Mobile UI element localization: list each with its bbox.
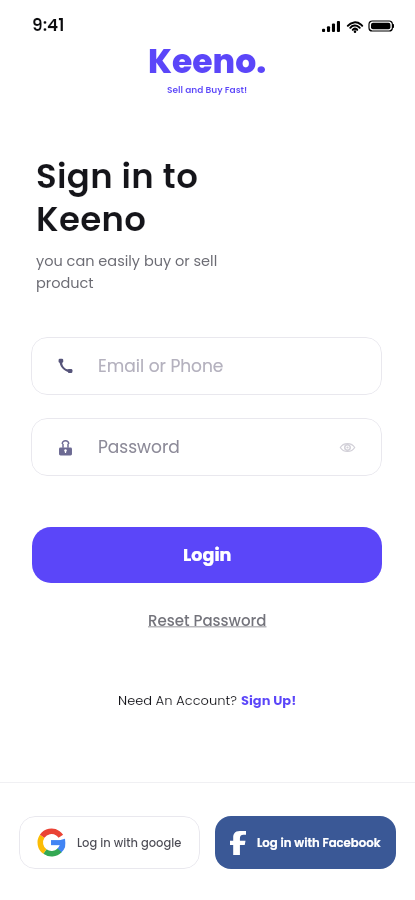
staticText: Log in with google [77,835,182,851]
staticText: 9:41 [32,13,65,37]
button[interactable]: Password [31,418,382,476]
button[interactable]: Log in with google [19,816,200,869]
button[interactable]: Sign Up! [241,691,297,709]
button[interactable]: Reset Password [144,606,271,635]
staticText: Sign in to Keeno [36,152,199,243]
button[interactable]: Show password [335,435,359,459]
button[interactable]: Login [32,527,382,583]
staticText: Login [183,543,232,568]
staticText: Password [98,435,180,459]
staticText: Log in with Facebook [257,835,381,851]
staticText: you can easily buy or sell product [36,251,218,293]
button[interactable]: Log in with Facebook [215,816,396,869]
staticText: Keeno. [148,38,267,84]
staticText: Email or Phone [98,354,224,378]
button[interactable]: Email or Phone [31,337,382,395]
staticText: Need An Account? [118,691,241,709]
staticText: Sell and Buy Fast! [167,84,248,97]
